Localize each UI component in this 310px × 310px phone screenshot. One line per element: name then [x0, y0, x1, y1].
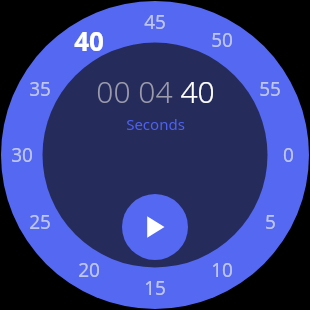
staticText: 20: [78, 257, 100, 283]
staticText: 40: [74, 23, 104, 58]
button[interactable]: 25: [16, 204, 64, 240]
staticText: 25: [29, 209, 51, 235]
button[interactable]: 30: [0, 137, 46, 173]
button[interactable]: Start timer: [122, 194, 188, 260]
button[interactable]: 50: [198, 22, 246, 58]
staticText: 00 04 40: [96, 71, 215, 112]
button[interactable]: 15: [131, 270, 179, 306]
staticText: 0: [283, 142, 294, 168]
button[interactable]: 35: [16, 71, 64, 107]
staticText: 45: [144, 9, 166, 35]
staticText: 10: [211, 257, 233, 283]
button[interactable]: 40: [65, 22, 113, 58]
button[interactable]: 20: [65, 252, 113, 288]
staticText: 5: [265, 209, 276, 235]
staticText: 35: [29, 76, 51, 102]
staticText: 15: [144, 275, 166, 301]
button[interactable]: 55: [246, 71, 294, 107]
button[interactable]: 0: [264, 137, 310, 173]
button[interactable]: 5: [246, 204, 294, 240]
staticText: 30: [11, 142, 33, 168]
staticText: 50: [211, 27, 233, 53]
button[interactable]: 45: [131, 4, 179, 40]
button[interactable]: 10: [198, 252, 246, 288]
staticText: Seconds: [126, 114, 185, 134]
staticText: 55: [259, 76, 281, 102]
